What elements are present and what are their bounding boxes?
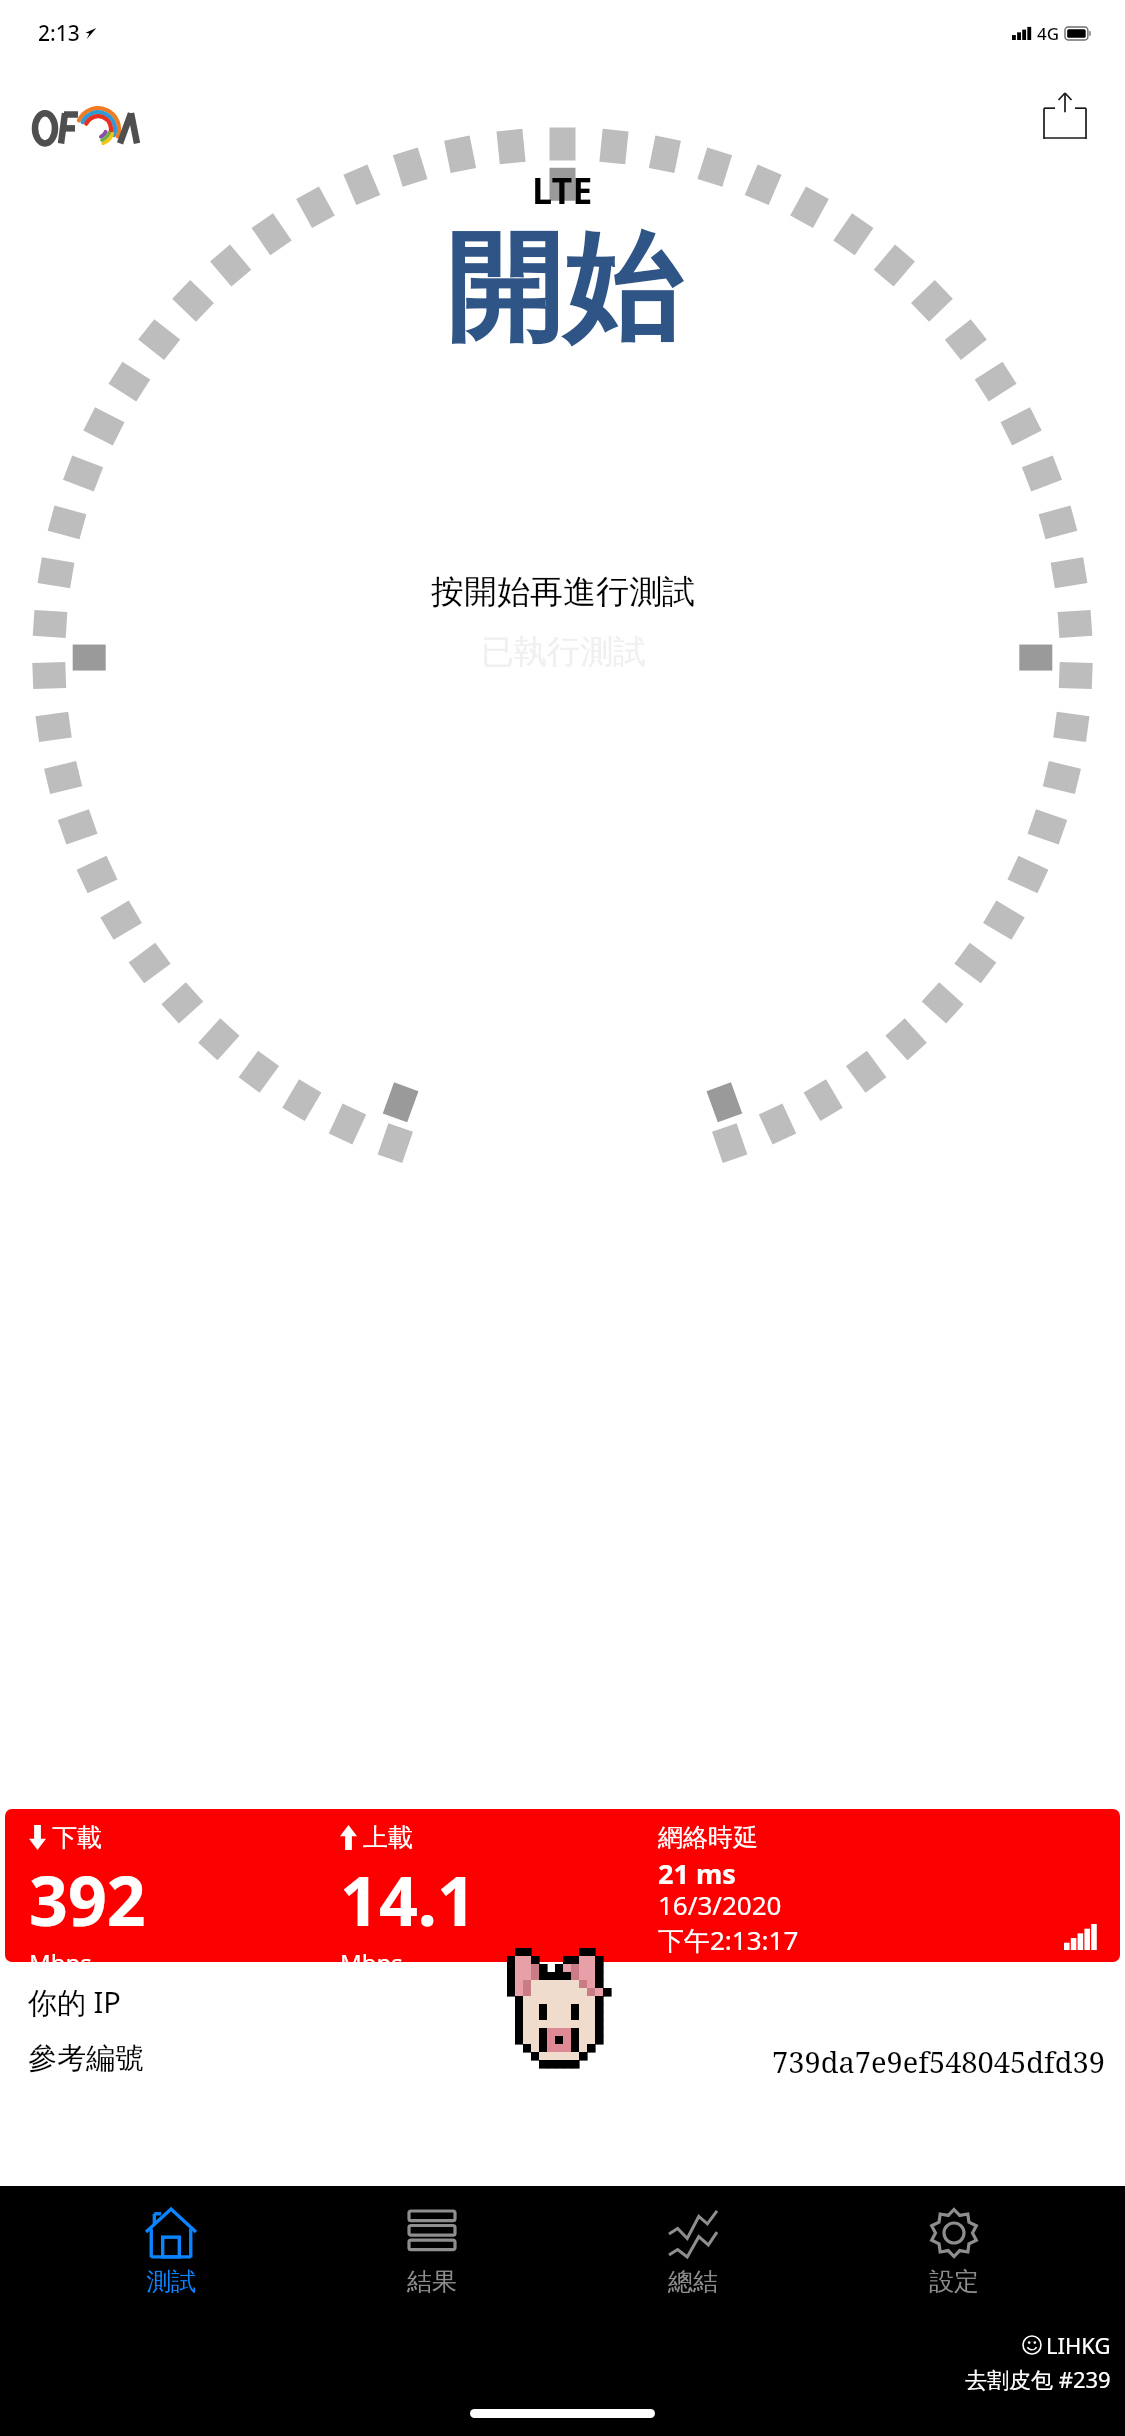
staticText: 下載 xyxy=(52,1822,102,1853)
button[interactable]: 測試 xyxy=(81,2200,261,2301)
staticText: 開始 xyxy=(445,214,681,363)
staticText: 14.1 xyxy=(340,1853,476,1946)
staticText: 去割皮包 #239 xyxy=(965,2364,1111,2394)
staticText: 結果 xyxy=(407,2266,457,2297)
button[interactable]: 設定 xyxy=(864,2200,1044,2301)
staticText: 按開始再進行測試 xyxy=(431,571,695,613)
staticText: LTE xyxy=(532,166,593,215)
button[interactable]: 開始 xyxy=(445,214,681,363)
staticText: 392 xyxy=(29,1853,146,1946)
staticText: LIHKG xyxy=(1046,2330,1111,2360)
staticText: 739da7e9ef548045dfd39 xyxy=(772,2042,1105,2081)
staticText: 測試 xyxy=(146,2266,196,2297)
other: OFCA logo xyxy=(34,104,154,146)
button[interactable]: Share xyxy=(1033,84,1097,148)
staticText: 網絡時延 xyxy=(658,1822,758,1853)
staticText: 參考編號 xyxy=(28,2040,144,2077)
staticText: 下午2:13:17 xyxy=(658,1922,799,1958)
staticText: 已執行測試 xyxy=(481,631,646,673)
staticText: 21 ms xyxy=(658,1855,736,1892)
staticText: Mbps xyxy=(29,1946,92,1962)
staticText: Mbps xyxy=(340,1946,403,1962)
button[interactable]: 總結 xyxy=(603,2200,783,2301)
button[interactable]: 下載 xyxy=(5,1809,1120,1962)
button[interactable]: 結果 xyxy=(342,2200,522,2301)
staticText: 設定 xyxy=(929,2266,979,2297)
staticText: 上載 xyxy=(363,1822,413,1853)
staticText: 總結 xyxy=(668,2266,718,2297)
staticText: 你的 IP xyxy=(28,1982,121,2022)
staticText: 2:13 xyxy=(38,19,80,48)
staticText: 4G xyxy=(1037,22,1060,45)
staticText: 16/3/2020 xyxy=(658,1887,782,1922)
